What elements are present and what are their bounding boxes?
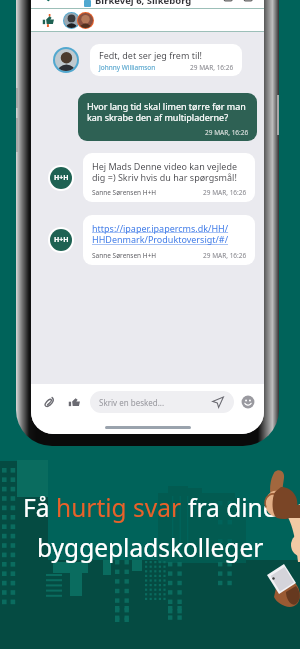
staticText: Hvor lang tid skal limen tørre før man k…: [87, 100, 249, 124]
staticText: Fedt, det ser jeg frem til!: [99, 49, 202, 61]
staticText: 29 MAR, 16:26: [203, 251, 247, 260]
staticText: Birkevej 6, Silkeborg: [95, 0, 192, 7]
button[interactable]: Thumbs up: [64, 392, 84, 412]
button[interactable]: Send: [211, 395, 225, 409]
button[interactable]: Skriv en besked...: [90, 391, 234, 413]
staticText: 29 MAR, 16:26: [190, 63, 234, 72]
button[interactable]: Back: [35, 0, 57, 7]
button[interactable]: Documents: [220, 0, 240, 7]
staticText: Sanne Sørensen H+H: [92, 251, 157, 260]
button[interactable]: Gallery: [240, 0, 260, 7]
staticText: 29 MAR, 16:26: [205, 128, 249, 137]
staticText: hurtig svar: [56, 491, 188, 524]
staticText: Sanne Sørensen H+H: [92, 188, 157, 197]
staticText: 29 MAR, 16:26: [203, 188, 247, 197]
button[interactable]: Hej Mads Denne video kan vejlede dig =) …: [83, 153, 255, 202]
button[interactable]: Attach: [39, 392, 59, 412]
button[interactable]: Member 2: [78, 13, 93, 28]
staticText: H+H: [54, 235, 69, 245]
staticText: Hej Mads Denne video kan vejlede dig =) …: [92, 160, 247, 184]
staticText: fra dine: [188, 491, 277, 524]
staticText: byggepladskolleger: [37, 531, 264, 564]
button[interactable]: Member 1: [64, 13, 79, 28]
button[interactable]: https://ipaper.ipapercms.dk/HH/HHDenmark…: [83, 215, 255, 265]
staticText: Johnny Williamson: [99, 63, 156, 72]
button[interactable]: Fedt, det ser jeg frem til!: [90, 44, 242, 76]
staticText: https://ipaper.ipapercms.dk/HH/HHDenmark…: [92, 222, 247, 246]
staticText: Få: [23, 491, 56, 524]
button[interactable]: Thumbs up: [40, 12, 57, 29]
button[interactable]: Hvor lang tid skal limen tørre før man k…: [78, 93, 257, 141]
staticText: H+H: [54, 173, 69, 183]
button[interactable]: Emoji: [240, 394, 256, 410]
staticText: Skriv en besked...: [99, 397, 165, 408]
